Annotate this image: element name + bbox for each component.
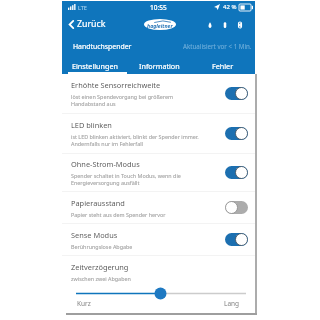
button[interactable]: Einstellungen bbox=[62, 57, 127, 74]
staticText: Ohne-Strom-Modus bbox=[71, 159, 140, 169]
staticText: Information bbox=[139, 61, 180, 71]
staticText: Sense Modus bbox=[71, 230, 118, 240]
button[interactable] bbox=[76, 286, 246, 298]
staticText: Erhöhte Sensorreichweite bbox=[71, 80, 161, 90]
button[interactable]: Fehler bbox=[191, 57, 255, 74]
button[interactable]: Reinigung bbox=[204, 19, 215, 30]
staticText: Papier steht aus dem Spender hervor bbox=[71, 211, 166, 218]
staticText: Einstellungen bbox=[72, 61, 118, 71]
staticText: LED blinken bbox=[71, 120, 112, 130]
staticText: Handtuchspender bbox=[73, 42, 132, 51]
staticText: Zeitverzögerung bbox=[71, 262, 129, 272]
button[interactable]: Bluetooth bbox=[234, 19, 245, 30]
staticText: Fehler bbox=[212, 61, 234, 71]
button[interactable]: Ohne-Strom-Modus bbox=[62, 154, 255, 192]
staticText: Lang bbox=[224, 299, 240, 308]
button[interactable]: Information bbox=[127, 57, 191, 74]
staticText: zwischen zwei Abgaben bbox=[71, 275, 131, 282]
staticText: löst einen Spendevorgang bei größerem Ha… bbox=[71, 93, 174, 107]
button[interactable]: LED blinken bbox=[62, 114, 255, 154]
staticText: Kurz bbox=[77, 299, 91, 308]
button[interactable]: Papierausstand bbox=[62, 192, 255, 224]
staticText: Zurück bbox=[77, 18, 106, 30]
button[interactable]: Zurück bbox=[67, 15, 108, 33]
staticText: 10:55 bbox=[150, 3, 167, 12]
staticText: Berührungslose Abgabe bbox=[71, 243, 133, 250]
staticText: LTE bbox=[78, 4, 87, 11]
staticText: ist LED blinken aktiviert, blinkt der Sp… bbox=[71, 133, 199, 147]
staticText: hagleitner bbox=[147, 22, 173, 29]
staticText: Spender schaltet in Touch Modus, wenn di… bbox=[71, 172, 181, 186]
staticText: Papierausstand bbox=[71, 198, 125, 208]
button[interactable]: Papier bbox=[219, 19, 230, 30]
button[interactable]: Erhöhte Sensorreichweite bbox=[62, 74, 255, 114]
staticText: 42 % bbox=[223, 3, 237, 11]
staticText: Aktualisiert vor < 1 Min. bbox=[183, 42, 252, 50]
button[interactable]: Sense Modus bbox=[62, 224, 255, 256]
